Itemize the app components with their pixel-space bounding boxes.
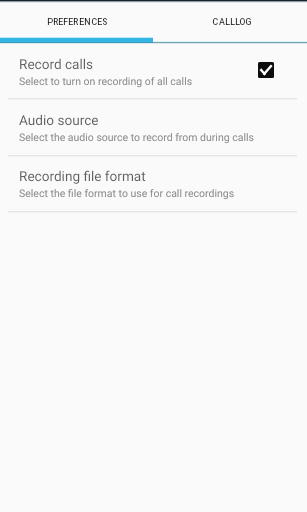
button[interactable]: Audio source [0,99,307,155]
button[interactable]: Record calls checkbox [258,62,274,78]
staticText: Recording file format [19,168,146,184]
staticText: Audio source [19,112,99,128]
staticText: Select the file format to use for call r… [19,187,235,199]
button[interactable]: PREFERENCES [0,1,153,43]
staticText: Record calls [19,56,94,72]
staticText: Select to turn on recording of all calls [19,75,193,87]
button[interactable]: Recording file format [0,155,307,212]
button[interactable]: CALLLOG [153,1,307,43]
staticText: Select the audio source to record from d… [19,131,254,143]
staticText: PREFERENCES [47,17,107,27]
button[interactable]: Record calls [0,43,307,99]
staticText: CALLLOG [212,17,253,27]
